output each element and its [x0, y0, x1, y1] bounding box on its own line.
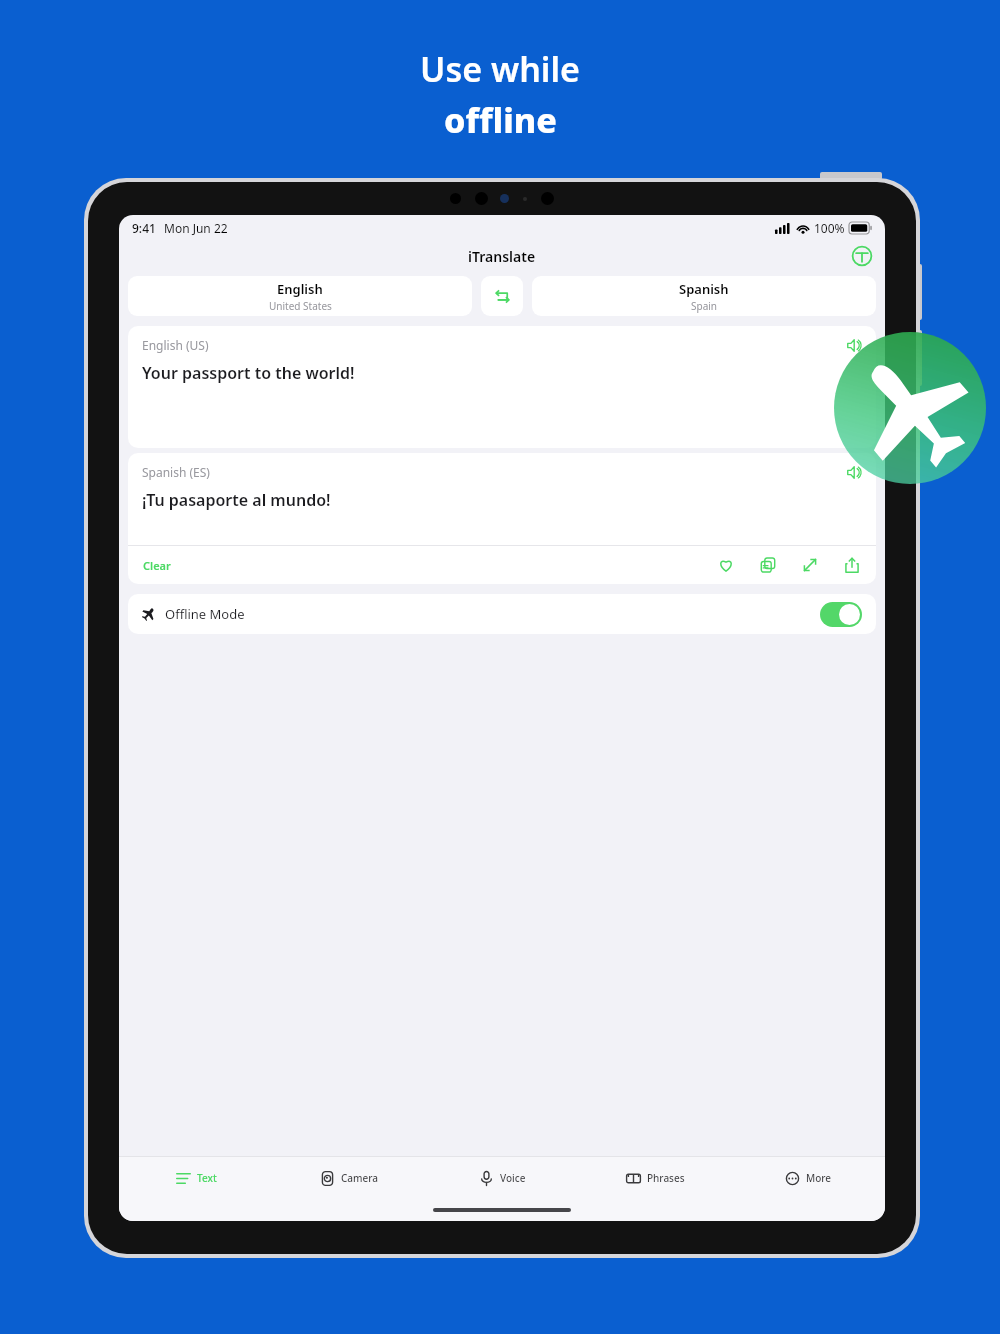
button[interactable]: Offline Mode toggle, on	[820, 602, 862, 627]
staticText: United States	[269, 299, 332, 313]
staticText: Voice	[500, 1171, 526, 1185]
button[interactable]: iTranslate logo	[851, 245, 873, 267]
staticText: Mon Jun 22	[164, 220, 228, 236]
staticText: English (US)	[142, 337, 209, 353]
staticText: More	[806, 1171, 832, 1185]
staticText: 100%	[814, 220, 845, 236]
button[interactable]: Phrases	[579, 1157, 732, 1199]
other: Offline airplane mode	[834, 332, 986, 484]
button[interactable]: English (US)	[128, 326, 876, 448]
staticText: iTranslate	[468, 247, 536, 266]
button[interactable]: Offline Mode	[128, 594, 876, 634]
button[interactable]: Camera	[273, 1157, 426, 1199]
staticText: Spain	[691, 299, 718, 313]
staticText: Phrases	[647, 1171, 685, 1185]
button[interactable]: Clear	[141, 554, 173, 577]
staticText: offline	[444, 97, 557, 143]
staticText: Text	[197, 1171, 217, 1185]
button[interactable]: Copy	[757, 554, 779, 576]
staticText: Use while	[420, 46, 580, 92]
button[interactable]: Play audio	[844, 335, 864, 355]
button[interactable]: Spanish (ES)	[128, 453, 876, 545]
staticText: Your passport to the world!	[142, 362, 355, 384]
staticText: Clear	[143, 558, 171, 573]
staticText: Spanish (ES)	[142, 464, 210, 480]
staticText: Camera	[341, 1171, 379, 1185]
button[interactable]: Voice	[426, 1157, 579, 1199]
button[interactable]: Favourite	[715, 554, 737, 576]
staticText: Offline Mode	[165, 605, 245, 623]
button[interactable]: Swap languages	[481, 276, 523, 316]
button[interactable]: Share	[841, 554, 863, 576]
staticText: ¡Tu pasaporte al mundo!	[142, 489, 331, 511]
button[interactable]: Expand	[799, 554, 821, 576]
staticText: Spanish	[679, 280, 729, 298]
button[interactable]: Spanish	[532, 276, 876, 316]
staticText: English	[277, 280, 323, 298]
button[interactable]: Play audio	[844, 462, 864, 482]
button[interactable]: More	[732, 1157, 885, 1199]
button[interactable]: Text	[119, 1157, 273, 1199]
button[interactable]: English	[128, 276, 472, 316]
staticText: 9:41	[132, 220, 156, 236]
